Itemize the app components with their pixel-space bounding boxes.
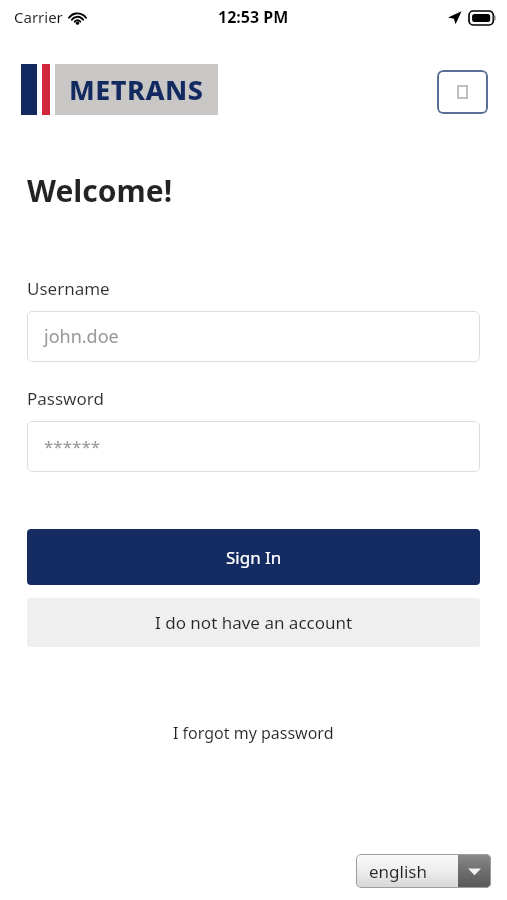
staticText: Username: [27, 277, 110, 300]
staticText: 12:53 PM: [218, 6, 289, 28]
staticText: english: [369, 860, 427, 883]
button[interactable]: Sign In: [27, 529, 480, 585]
staticText: METRANS: [69, 71, 204, 108]
staticText: I forgot my password: [173, 722, 334, 744]
button[interactable]: Menu: [437, 70, 488, 114]
staticText: Welcome!: [27, 170, 173, 211]
staticText: Carrier: [14, 7, 63, 27]
button[interactable]: I forgot my password: [27, 717, 480, 749]
staticText: john.doe: [44, 324, 119, 349]
button[interactable]: john.doe: [27, 311, 480, 362]
button[interactable]: I do not have an account: [27, 598, 480, 647]
staticText: Password: [27, 387, 104, 410]
button[interactable]: english: [356, 854, 491, 888]
staticText: I do not have an account: [155, 611, 353, 634]
staticText: Sign In: [226, 546, 282, 569]
button[interactable]: ******: [27, 421, 480, 472]
staticText: ******: [44, 435, 101, 458]
